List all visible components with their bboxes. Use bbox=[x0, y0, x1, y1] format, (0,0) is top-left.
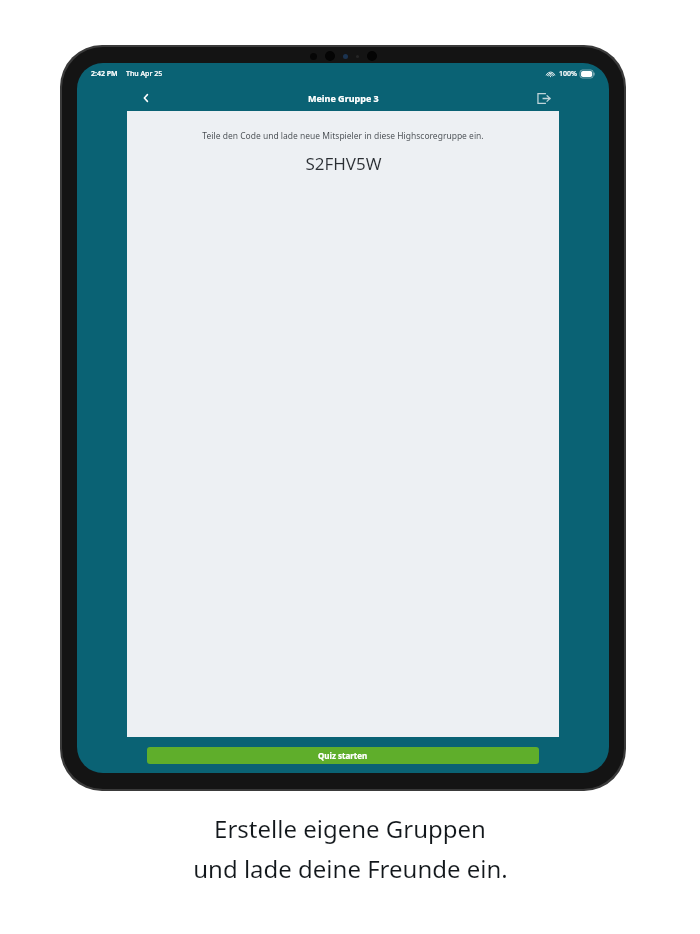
staticText: Erstelle eigene Gruppen bbox=[214, 812, 486, 845]
staticText: Quiz starten bbox=[318, 750, 368, 761]
staticText: und lade deine Freunde ein. bbox=[193, 852, 508, 885]
staticText: Thu Apr 25 bbox=[126, 69, 163, 79]
staticText: 100% bbox=[559, 69, 577, 79]
staticText: Meine Gruppe 3 bbox=[308, 92, 379, 104]
button[interactable]: Log out bbox=[530, 85, 556, 111]
button[interactable]: Back bbox=[133, 85, 159, 111]
staticText: Teile den Code und lade neue Mitspieler … bbox=[202, 130, 484, 142]
staticText: S2FHV5W bbox=[305, 152, 382, 175]
button[interactable]: Quiz starten bbox=[147, 747, 539, 764]
staticText: 2:42 PM bbox=[91, 69, 118, 79]
